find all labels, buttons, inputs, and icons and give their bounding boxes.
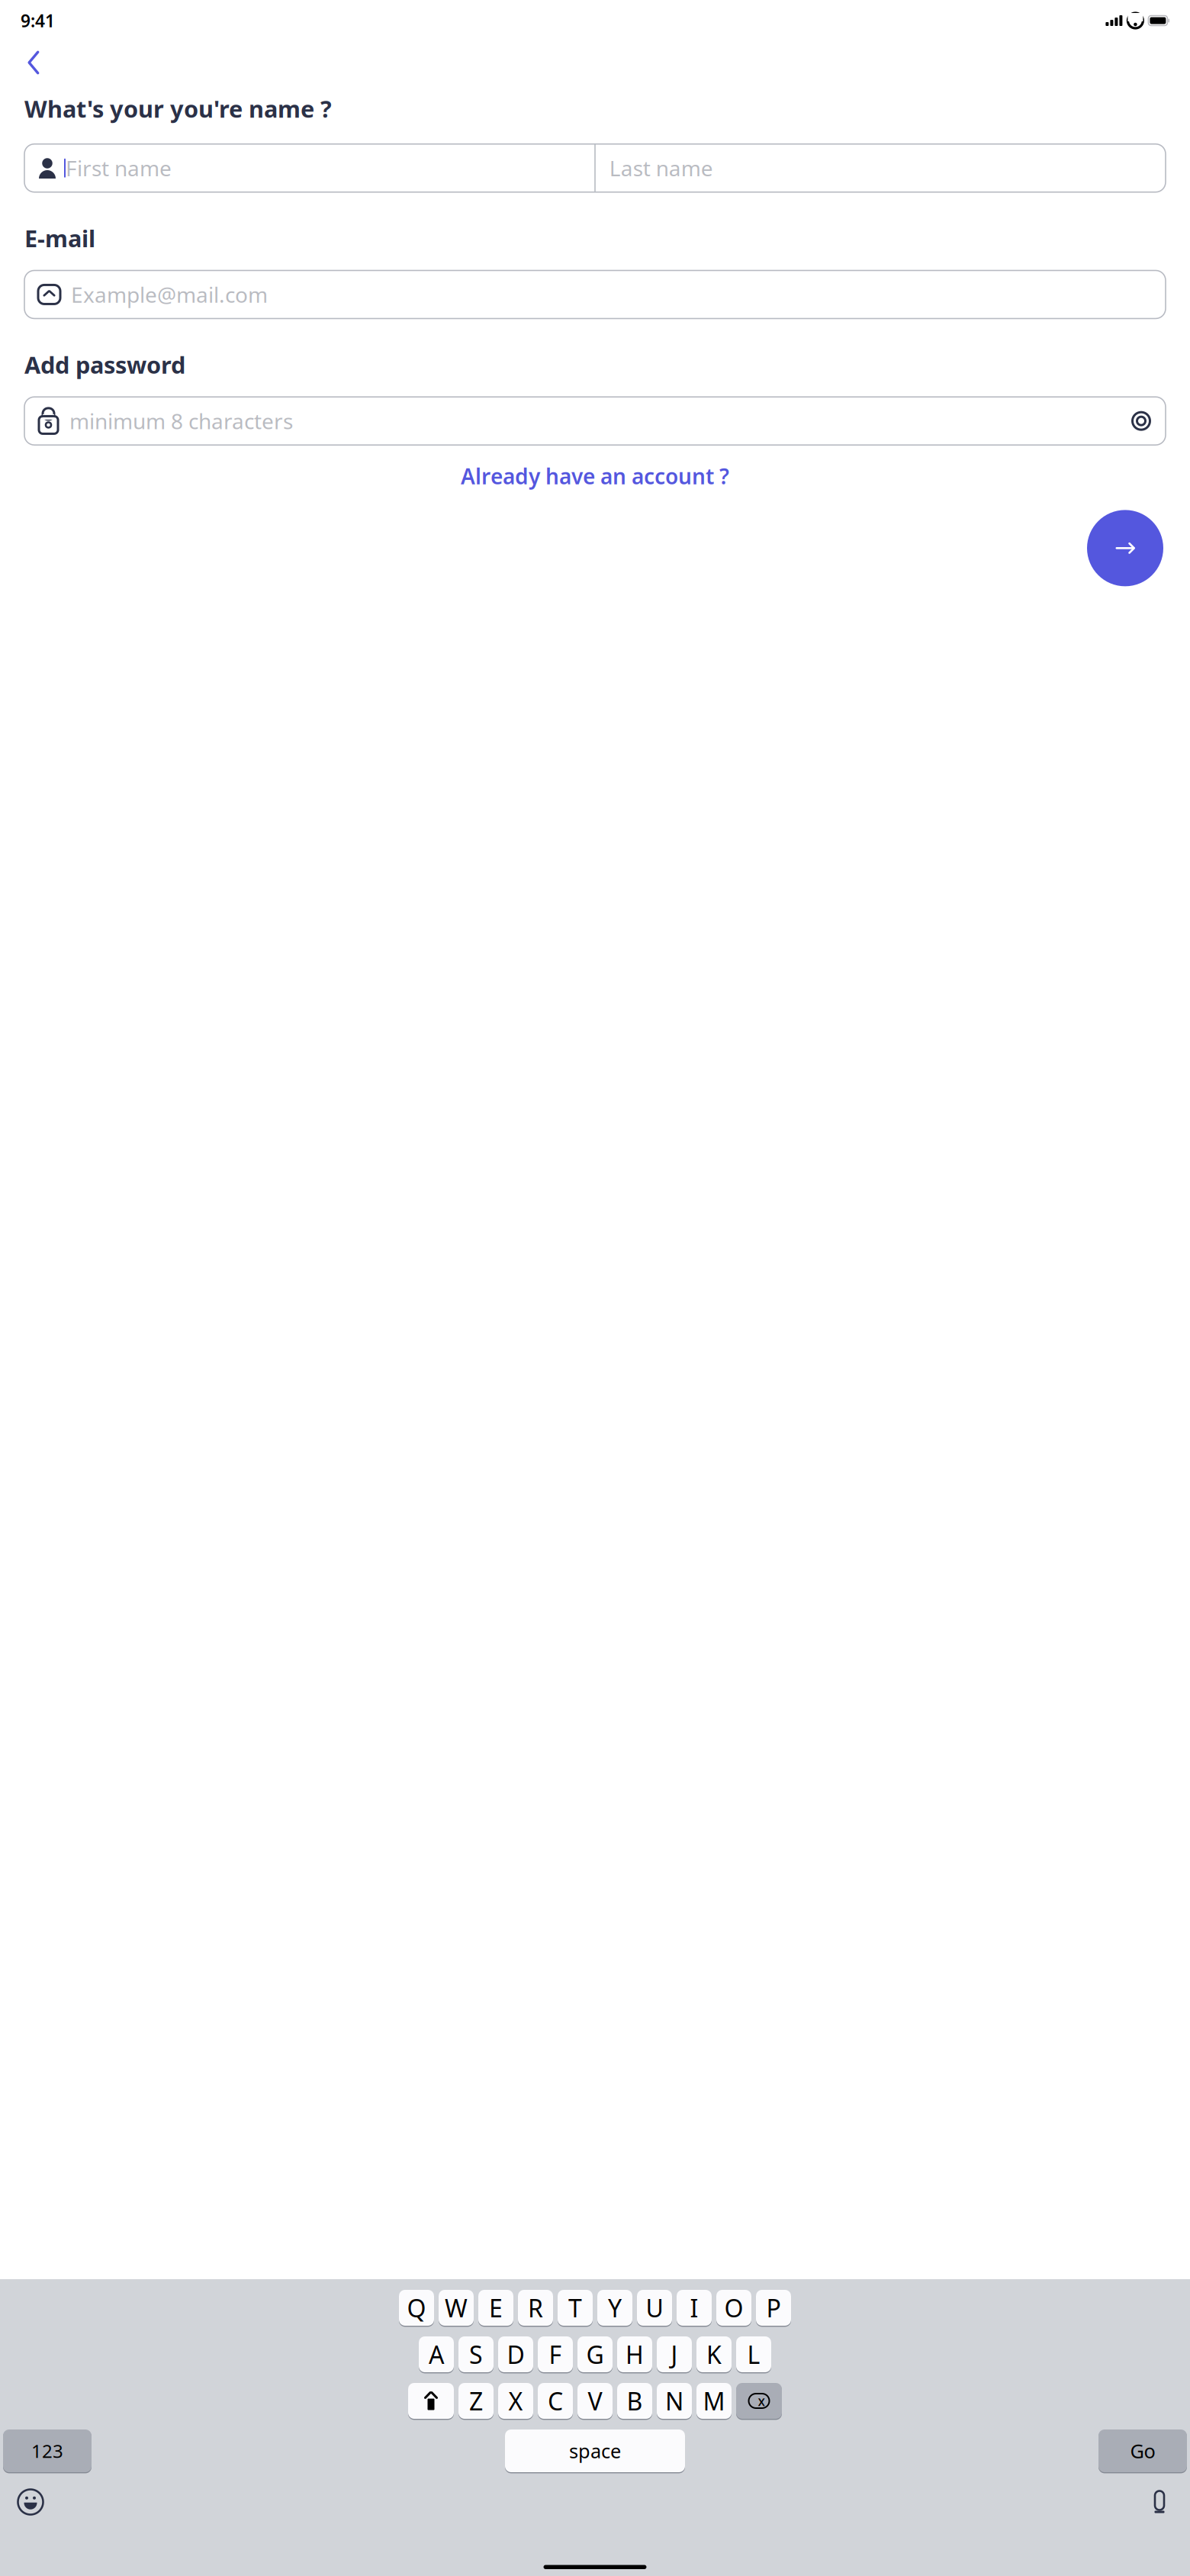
button[interactable]: U	[637, 2289, 672, 2326]
staticText: N	[665, 2385, 683, 2417]
staticText: First name	[66, 154, 172, 182]
button[interactable]: Back	[24, 46, 58, 79]
staticText: H	[626, 2338, 644, 2371]
button[interactable]: N	[657, 2382, 692, 2420]
staticText: 9:41	[21, 9, 55, 32]
staticText: x	[758, 2392, 765, 2410]
staticText: X	[508, 2385, 523, 2417]
button[interactable]: Delete	[736, 2382, 782, 2420]
button[interactable]: I	[677, 2289, 712, 2326]
staticText: J	[671, 2338, 678, 2371]
staticText: V	[588, 2385, 602, 2417]
button[interactable]: Dictation	[1144, 2487, 1175, 2517]
button[interactable]: space	[505, 2429, 685, 2473]
staticText: space	[569, 2438, 621, 2464]
button[interactable]: A	[419, 2336, 454, 2373]
button[interactable]: F	[538, 2336, 573, 2373]
staticText: S	[469, 2338, 483, 2371]
button[interactable]: Continue	[1087, 510, 1163, 586]
button[interactable]: Q	[399, 2289, 434, 2326]
staticText: D	[507, 2338, 524, 2371]
staticText: F	[549, 2338, 562, 2371]
button[interactable]: J	[657, 2336, 692, 2373]
button[interactable]: V	[577, 2382, 613, 2420]
button[interactable]: X	[498, 2382, 533, 2420]
button[interactable]: L	[736, 2336, 771, 2373]
button[interactable]: T	[558, 2289, 593, 2326]
button[interactable]: B	[617, 2382, 652, 2420]
staticText: E-mail	[24, 223, 95, 254]
button[interactable]: Z	[458, 2382, 494, 2420]
staticText: C	[548, 2385, 563, 2417]
button[interactable]: Shift	[408, 2382, 454, 2420]
staticText: E	[489, 2292, 503, 2324]
button[interactable]: O	[716, 2289, 751, 2326]
staticText: Z	[469, 2385, 483, 2417]
staticText: B	[627, 2385, 643, 2417]
staticText: Add password	[24, 349, 185, 380]
button[interactable]: R	[518, 2289, 553, 2326]
button[interactable]: K	[696, 2336, 732, 2373]
button[interactable]: H	[617, 2336, 652, 2373]
staticText: W	[445, 2292, 468, 2324]
staticText: G	[586, 2338, 604, 2371]
button[interactable]: M	[696, 2382, 732, 2420]
staticText: K	[706, 2338, 722, 2371]
staticText: Last name	[609, 154, 713, 182]
button[interactable]: Y	[597, 2289, 632, 2326]
button[interactable]: G	[577, 2336, 613, 2373]
staticText: I	[690, 2292, 698, 2324]
button[interactable]: E	[478, 2289, 513, 2326]
staticText: Q	[407, 2292, 426, 2324]
staticText: Example@mail.com	[71, 280, 268, 309]
staticText: What's your you're name ?	[24, 93, 332, 124]
button[interactable]: 123	[3, 2429, 92, 2473]
staticText: M	[703, 2385, 725, 2417]
button[interactable]: P	[756, 2289, 791, 2326]
button[interactable]: S	[458, 2336, 494, 2373]
staticText: O	[724, 2292, 743, 2324]
button[interactable]: Already have an account ?	[24, 456, 1166, 496]
staticText: U	[646, 2292, 663, 2324]
staticText: Already have an account ?	[461, 462, 729, 490]
button[interactable]: Example@mail.com	[24, 270, 1166, 318]
staticText: T	[568, 2292, 582, 2324]
staticText: 123	[31, 2439, 63, 2463]
staticText: A	[429, 2338, 444, 2371]
staticText: Y	[608, 2292, 622, 2324]
staticText: minimum 8 characters	[69, 407, 293, 435]
button[interactable]: W	[439, 2289, 474, 2326]
button[interactable]: Go	[1098, 2429, 1187, 2473]
staticText: Go	[1130, 2438, 1155, 2464]
staticText: L	[747, 2338, 760, 2371]
button[interactable]: Show password	[1124, 404, 1158, 438]
staticText: R	[528, 2292, 543, 2324]
button[interactable]: Emoji	[15, 2487, 46, 2517]
button[interactable]: C	[538, 2382, 573, 2420]
button[interactable]: D	[498, 2336, 533, 2373]
staticText: P	[766, 2292, 781, 2324]
